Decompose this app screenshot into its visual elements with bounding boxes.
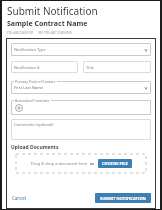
staticText: First Last Name	[14, 85, 44, 90]
staticText: Associated Contracts	[15, 98, 50, 103]
staticText: Drag & drop a document here	[31, 161, 88, 166]
staticText: CHOOSE FILE	[102, 161, 128, 166]
staticText: REF PID: ABC123456789	[38, 31, 72, 35]
button[interactable]: Cancel	[11, 194, 28, 202]
staticText: Primary Point of Contact	[15, 79, 56, 84]
button[interactable]: SUBMIT NOTIFICATION	[95, 193, 151, 203]
staticText: SUBMIT NOTIFICATION	[100, 196, 146, 201]
button[interactable]: Add associated contract	[15, 104, 23, 112]
button[interactable]: CHOOSE FILE	[98, 159, 132, 168]
staticText: Sample Contract Name	[7, 19, 88, 29]
staticText: Upload Documents	[11, 144, 59, 151]
button[interactable]: Notification Type	[11, 43, 151, 56]
staticText: or	[90, 161, 95, 166]
staticText: Notification Type	[14, 47, 46, 52]
staticText: Comments (optional)	[14, 122, 54, 127]
staticText: Title	[86, 65, 94, 70]
staticText: Cancel	[12, 195, 27, 201]
button[interactable]: First Last Name	[11, 81, 151, 94]
staticText: Notification #	[14, 65, 40, 70]
button[interactable]: Comments (optional)	[11, 119, 151, 140]
staticText: PID: ABC23456789	[7, 31, 34, 35]
button[interactable]: Title	[83, 61, 151, 73]
button[interactable]: Notification #	[11, 61, 78, 73]
staticText: Submit Notification	[7, 4, 98, 18]
